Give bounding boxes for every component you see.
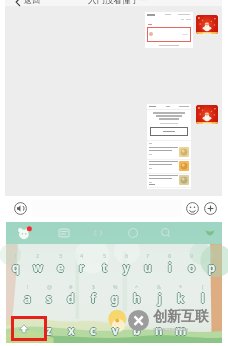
staticText: q	[13, 260, 21, 276]
staticText: s	[45, 291, 51, 307]
staticText: x	[68, 324, 75, 340]
staticText: u	[143, 260, 151, 276]
staticText: @	[47, 283, 52, 290]
button[interactable]: #	[60, 283, 82, 307]
staticText: n	[155, 324, 163, 340]
button[interactable]: Emoji	[186, 202, 199, 215]
button[interactable]: Theme	[203, 226, 217, 240]
button[interactable]: 3	[49, 252, 71, 276]
staticText: m	[176, 323, 188, 339]
staticText: 0	[210, 252, 214, 259]
button[interactable]: Back	[11, 0, 24, 7]
button[interactable]	[147, 146, 191, 160]
staticText: z	[46, 322, 52, 338]
staticText: i	[167, 260, 171, 276]
button[interactable]: 2	[27, 252, 49, 276]
staticText: s	[47, 291, 53, 307]
staticText: i	[169, 260, 173, 276]
staticText: m	[174, 323, 186, 339]
staticText: n	[155, 323, 163, 339]
button[interactable]: 7	[137, 252, 159, 276]
button[interactable]: More functions	[204, 202, 217, 215]
staticText: l	[201, 292, 205, 308]
staticText: q	[12, 259, 20, 275]
staticText: (	[202, 283, 204, 290]
button[interactable]: Keyboard layout	[57, 226, 71, 240]
button[interactable]	[147, 174, 191, 188]
staticText: v	[111, 323, 118, 339]
staticText: q	[12, 261, 20, 277]
button[interactable]: m	[170, 315, 192, 339]
button[interactable]: x	[60, 315, 82, 339]
staticText: j	[157, 291, 161, 307]
button[interactable]: Sticker panel	[17, 226, 32, 241]
button[interactable]: Search	[159, 226, 173, 240]
button[interactable]: 4	[71, 252, 93, 276]
staticText: 返回	[24, 0, 40, 5]
staticText: k	[176, 291, 184, 307]
staticText: g	[111, 290, 119, 306]
staticText: j	[158, 290, 162, 306]
staticText: v	[112, 323, 119, 339]
button[interactable]: Voice input	[14, 202, 27, 215]
staticText: 8	[168, 252, 172, 259]
staticText: w	[33, 259, 43, 275]
button[interactable]: Profile photo	[196, 105, 218, 124]
button[interactable]: *	[170, 283, 192, 307]
staticText: u	[145, 260, 153, 276]
staticText: m	[175, 322, 187, 338]
staticText: q	[11, 260, 19, 276]
staticText: r	[80, 260, 86, 276]
button[interactable]: 5	[93, 252, 115, 276]
staticText: l	[201, 290, 205, 306]
button[interactable]: ^	[126, 283, 148, 307]
staticText: d	[67, 290, 75, 306]
button[interactable]: 1	[5, 252, 27, 276]
staticText: g	[111, 292, 119, 308]
staticText: f	[91, 290, 96, 306]
staticText: v	[112, 322, 119, 338]
staticText: t	[103, 260, 108, 276]
staticText: o	[188, 260, 196, 276]
staticText: c	[91, 323, 97, 339]
button[interactable]	[147, 160, 191, 174]
button[interactable]: z	[38, 315, 60, 339]
staticText: h	[133, 292, 141, 308]
button[interactable]: n	[148, 315, 170, 339]
staticText: b	[133, 324, 141, 340]
staticText: i	[168, 259, 172, 275]
staticText: ^	[135, 283, 139, 290]
button[interactable]: @	[38, 283, 60, 307]
staticText: 6	[125, 252, 129, 259]
button[interactable]: v	[104, 315, 126, 339]
button[interactable]: 8	[159, 252, 181, 276]
button[interactable]: 6	[115, 252, 137, 276]
staticText: *	[179, 283, 183, 290]
staticText: CHUANGXIN HULIAN	[153, 327, 188, 332]
staticText: t	[102, 261, 107, 277]
button[interactable]	[147, 104, 191, 189]
button[interactable]: c	[82, 315, 104, 339]
staticText: b	[133, 323, 141, 339]
button[interactable]: (	[192, 283, 214, 307]
button[interactable]: !	[16, 283, 38, 307]
staticText: z	[47, 323, 53, 339]
button[interactable]: Code input	[91, 226, 105, 240]
button[interactable]	[145, 12, 193, 48]
staticText: &	[157, 283, 162, 290]
button[interactable]: 9	[181, 252, 203, 276]
staticText: b	[134, 323, 142, 339]
staticText: %	[113, 283, 118, 290]
button[interactable]: $	[82, 283, 104, 307]
button[interactable]: b	[126, 315, 148, 339]
staticText: k	[178, 291, 186, 307]
button[interactable]: Settings	[126, 226, 140, 240]
button[interactable]: 0	[203, 252, 221, 276]
button[interactable]: Shift	[11, 316, 47, 341]
button[interactable]: &	[148, 283, 170, 307]
button[interactable]: %	[104, 283, 126, 307]
staticText: w	[34, 260, 44, 276]
staticText: e	[57, 261, 64, 277]
button[interactable]: Profile photo	[196, 15, 218, 34]
